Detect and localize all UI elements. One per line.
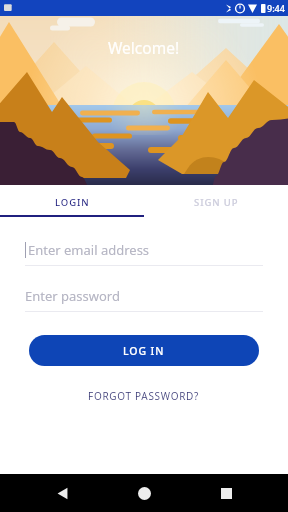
button[interactable]: LOG IN	[29, 335, 259, 366]
staticText: Enter password	[25, 287, 120, 305]
button[interactable]: SIGN UP	[144, 190, 288, 215]
button[interactable]: Enter password	[25, 287, 263, 312]
button[interactable]: LOGIN	[0, 190, 144, 215]
staticText: LOGIN	[55, 196, 90, 209]
button[interactable]: Enter email address	[25, 241, 263, 266]
button[interactable]: Home	[124, 474, 164, 512]
staticText: LOG IN	[123, 344, 165, 358]
staticText: 9:44	[267, 2, 285, 14]
staticText: SIGN UP	[194, 196, 239, 209]
button[interactable]: Recent apps	[206, 474, 246, 512]
staticText: Enter email address	[28, 241, 150, 259]
button[interactable]: FORGOT PASSWORD?	[80, 385, 208, 407]
button[interactable]: Back	[42, 474, 82, 512]
staticText: FORGOT PASSWORD?	[88, 389, 200, 403]
staticText: Welcome!	[108, 37, 180, 58]
